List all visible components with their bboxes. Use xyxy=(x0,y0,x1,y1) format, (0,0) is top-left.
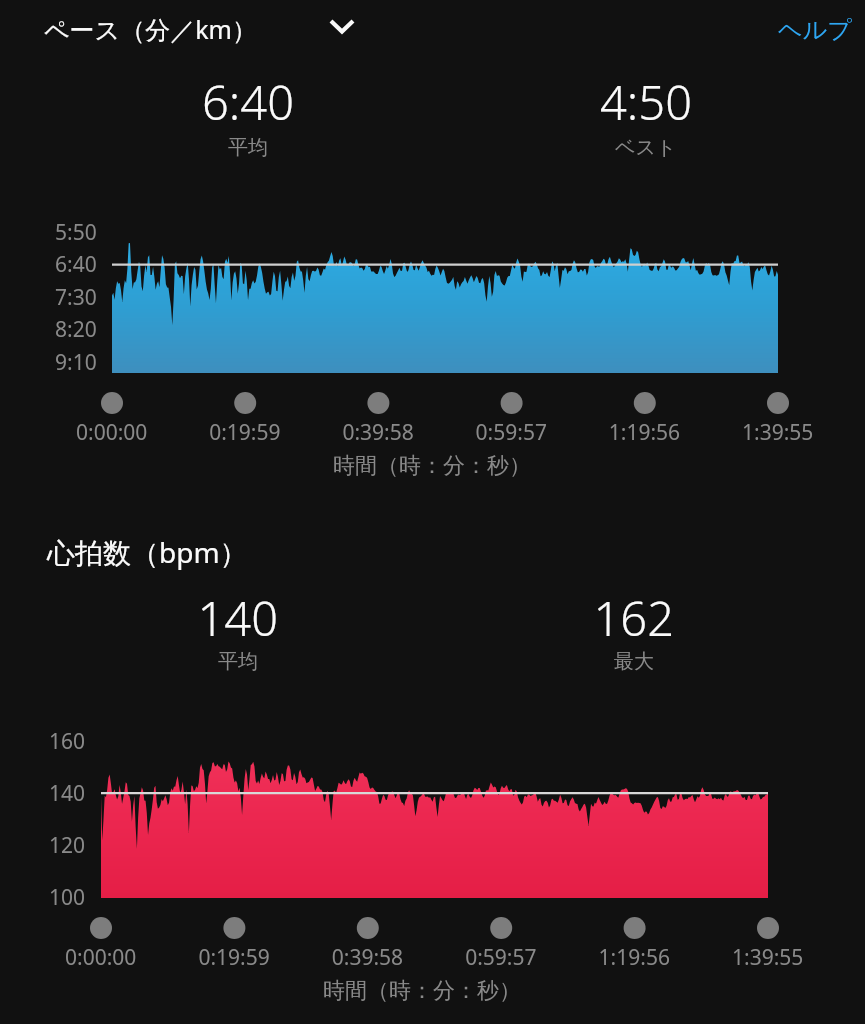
button[interactable]: ヘルプ xyxy=(755,6,855,52)
button[interactable]: ペース（分／km） 指標を選択 xyxy=(36,6,366,52)
